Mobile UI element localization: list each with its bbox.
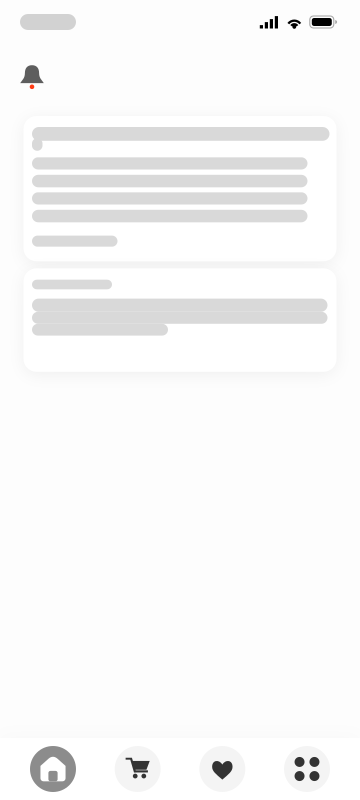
button[interactable]: Notifications	[14, 62, 50, 92]
button[interactable]: Cart	[115, 746, 161, 792]
button[interactable]: Favourites	[199, 746, 245, 792]
button[interactable]: Home	[30, 746, 76, 792]
button[interactable]: More	[284, 746, 330, 792]
